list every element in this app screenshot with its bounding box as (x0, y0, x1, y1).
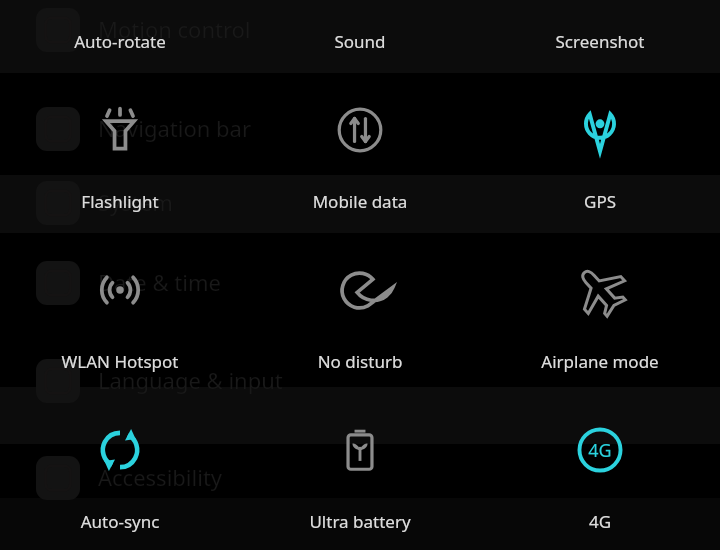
button[interactable]: 4G (480, 450, 720, 550)
staticText: 4G (588, 438, 612, 463)
staticText: WLAN Hotspot (0, 350, 240, 373)
button[interactable]: Auto-rotate (0, 0, 240, 130)
staticText: Date & time (98, 267, 221, 297)
button[interactable]: Airplane mode (480, 290, 720, 450)
staticText: Sound (240, 30, 480, 53)
button[interactable]: Ultra battery (240, 450, 480, 550)
button[interactable]: Auto-sync (0, 450, 240, 550)
staticText: No disturb (240, 350, 480, 373)
staticText: Airplane mode (480, 350, 720, 373)
button[interactable]: GPS (480, 130, 720, 290)
button[interactable]: Flashlight (0, 130, 240, 290)
staticText: Screenshot (480, 30, 720, 53)
staticText: Language & input (98, 365, 283, 395)
staticText: Flashlight (0, 190, 240, 213)
staticText: Mobile data (240, 190, 480, 213)
staticText: System (98, 187, 173, 217)
staticText: Accessibility (98, 462, 223, 492)
staticText: Auto-rotate (0, 30, 240, 53)
staticText: Ultra battery (240, 510, 480, 533)
button[interactable]: Mobile data (240, 130, 480, 290)
staticText: Auto-sync (0, 510, 240, 533)
button[interactable]: Screenshot (480, 0, 720, 130)
staticText: GPS (480, 190, 720, 213)
button[interactable]: Sound (240, 0, 480, 130)
staticText: Motion control (98, 14, 251, 44)
button[interactable]: No disturb (240, 290, 480, 450)
button[interactable]: WLAN Hotspot (0, 290, 240, 450)
staticText: 4G (480, 510, 720, 533)
staticText: Navigation bar (98, 113, 251, 143)
